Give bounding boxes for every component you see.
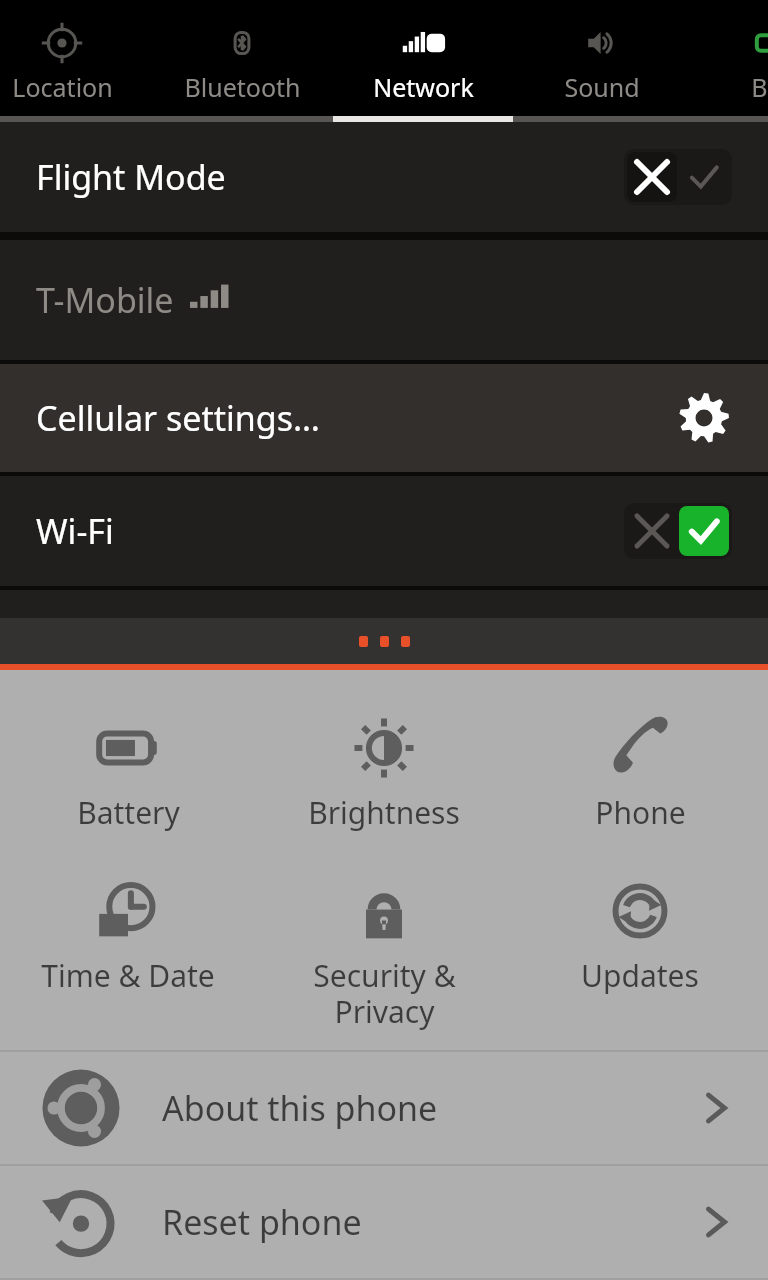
staticText: Updates	[581, 955, 699, 996]
staticText: Time & Date	[41, 955, 215, 996]
button[interactable]: Reset phone	[0, 1166, 768, 1278]
button[interactable]: Brightness	[256, 708, 512, 837]
staticText: Cellular settings…	[36, 395, 320, 441]
button[interactable]: Flight Mode	[0, 122, 768, 232]
button[interactable]: Bluetooth	[124, 0, 360, 116]
button[interactable]: Off	[624, 149, 732, 205]
button[interactable]: Sound	[513, 0, 691, 116]
button[interactable]: About this phone	[0, 1052, 768, 1164]
button[interactable]: Wi-Fi	[0, 476, 768, 586]
staticText: Phone	[595, 792, 686, 833]
button[interactable]: On	[624, 503, 732, 559]
staticText: Security & Privacy	[313, 955, 456, 1032]
button[interactable]: Location	[0, 0, 124, 116]
staticText: Battery	[77, 792, 180, 833]
button[interactable]: Updates	[512, 871, 768, 1000]
staticText: Brightness	[308, 792, 460, 833]
staticText: Bluetooth	[184, 70, 301, 104]
button[interactable]: T-Mobile	[0, 240, 768, 360]
button[interactable]: Ba	[691, 0, 768, 116]
staticText: Network	[373, 70, 474, 104]
staticText: Wi-Fi	[36, 508, 114, 554]
button[interactable]: Time & Date	[0, 871, 256, 1000]
button[interactable]: Cellular settings	[668, 382, 740, 454]
staticText: Flight Mode	[36, 154, 226, 200]
button[interactable]: Network	[333, 0, 513, 116]
staticText: Location	[12, 70, 113, 104]
button[interactable]: Cellular settings…	[0, 364, 768, 472]
button[interactable]: Drag handle	[0, 618, 768, 664]
button[interactable]: Security & Privacy	[256, 871, 512, 1036]
staticText: T-Mobile	[36, 277, 174, 323]
button[interactable]: Phone	[512, 708, 768, 837]
staticText: Ba	[751, 70, 768, 104]
staticText: Sound	[564, 70, 640, 104]
staticText: Reset phone	[162, 1199, 362, 1245]
staticText: About this phone	[162, 1085, 438, 1131]
button[interactable]: Battery	[0, 708, 256, 837]
